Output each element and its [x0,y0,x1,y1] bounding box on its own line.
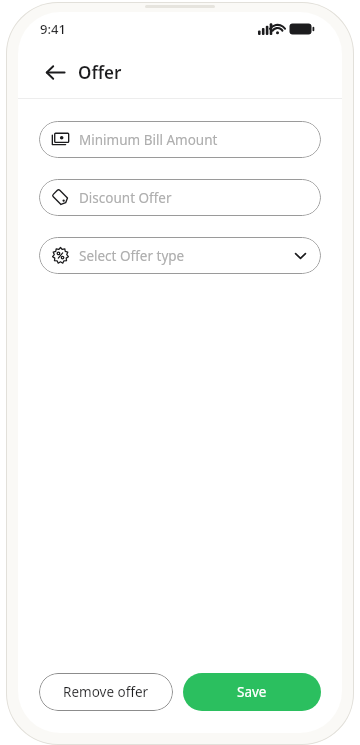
staticText: Discount Offer [79,189,172,207]
button[interactable]: Select Offer type [39,237,321,274]
staticText: Remove offer [63,683,149,701]
staticText: Save [237,683,267,701]
staticText: Offer [78,61,122,84]
staticText: 9:41 [40,20,66,38]
button[interactable]: Back [40,57,70,87]
staticText: Minimum Bill Amount [79,131,218,149]
staticText: Select Offer type [79,247,185,265]
button[interactable]: Discount Offer [39,179,321,216]
button[interactable]: Remove offer [39,673,173,711]
button[interactable]: Save [183,673,321,711]
button[interactable]: Minimum Bill Amount [39,121,321,158]
